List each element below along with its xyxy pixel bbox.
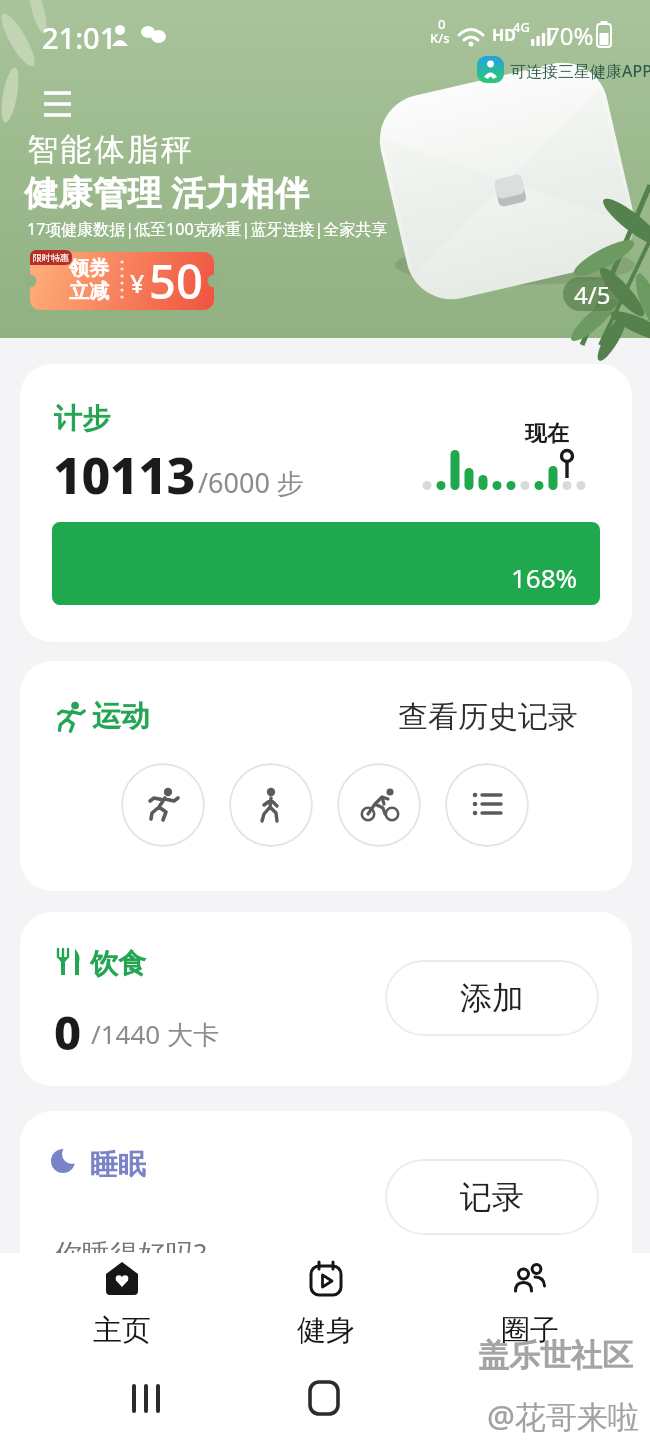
staticText: /1440 大卡 [91, 1016, 219, 1052]
staticText: 健康管理 活力相伴 [24, 169, 310, 215]
staticText: 10113 [53, 441, 195, 509]
staticText: 你睡得好吗? [54, 1234, 207, 1272]
button[interactable]: 主页 [64, 1259, 180, 1351]
staticText: 限时特惠 [33, 252, 69, 263]
button[interactable] [40, 86, 76, 122]
staticText: 饮食 [90, 946, 146, 981]
staticText: 4/5 [574, 278, 611, 311]
staticText: 睡眠 [90, 1147, 146, 1182]
button[interactable]: 睡眠 [20, 1111, 632, 1361]
button[interactable]: 可连接三星健康APP [477, 54, 649, 86]
button[interactable]: 健身 [268, 1259, 384, 1351]
staticText: 立减 [69, 279, 109, 304]
staticText: @花哥来啦 [487, 1395, 639, 1437]
staticText: 健身 [297, 1312, 355, 1349]
staticText: 记录 [460, 1177, 524, 1217]
staticText: HD [492, 24, 516, 46]
staticText: 4G [513, 18, 530, 36]
staticText: 运动 [92, 698, 150, 735]
button[interactable]: 查看历史记录 [398, 698, 578, 736]
staticText: 圈子 [501, 1312, 559, 1349]
button[interactable] [121, 763, 205, 847]
staticText: 0 [438, 15, 446, 33]
button[interactable] [337, 763, 421, 847]
staticText: 领券 [69, 256, 109, 281]
staticText: 70% [546, 19, 594, 52]
staticText: K/s [430, 29, 450, 47]
button[interactable]: 圈子 [472, 1259, 588, 1351]
button[interactable]: 领券 [30, 252, 214, 310]
button[interactable]: 添加 [385, 960, 599, 1036]
staticText: 168% [511, 560, 578, 595]
button[interactable]: 饮食 [20, 912, 632, 1086]
button[interactable] [229, 763, 313, 847]
staticText: 主页 [93, 1312, 151, 1349]
staticText: 计步 [54, 401, 110, 436]
staticText: 50 [149, 249, 203, 307]
staticText: 现在 [525, 420, 569, 448]
staticText: 可连接三星健康APP [510, 60, 650, 82]
staticText: 0 [54, 1000, 82, 1064]
staticText: 盖乐世社区 [478, 1336, 633, 1375]
staticText: 17项健康数据|低至100克称重|蓝牙连接|全家共享 [27, 218, 388, 240]
staticText: 查看历史记录 [398, 698, 578, 736]
button[interactable]: 计步 [20, 364, 632, 642]
staticText: 添加 [460, 978, 524, 1018]
button[interactable] [445, 763, 529, 847]
staticText: 21:01 [42, 18, 117, 57]
staticText: 智能体脂秤 [27, 130, 195, 169]
button[interactable]: 记录 [385, 1159, 599, 1235]
staticText: ¥ [130, 266, 145, 300]
staticText: /6000 步 [198, 464, 304, 501]
